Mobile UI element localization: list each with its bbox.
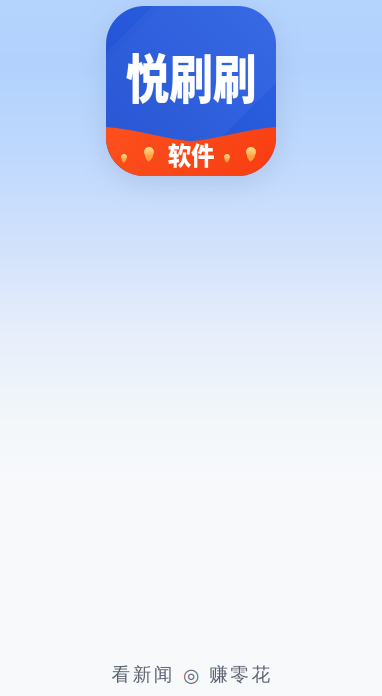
staticText: 看新闻 ◎ 赚零花 [112, 663, 270, 686]
staticText: 软件 [166, 135, 216, 172]
staticText: 悦刷刷 [111, 37, 270, 114]
